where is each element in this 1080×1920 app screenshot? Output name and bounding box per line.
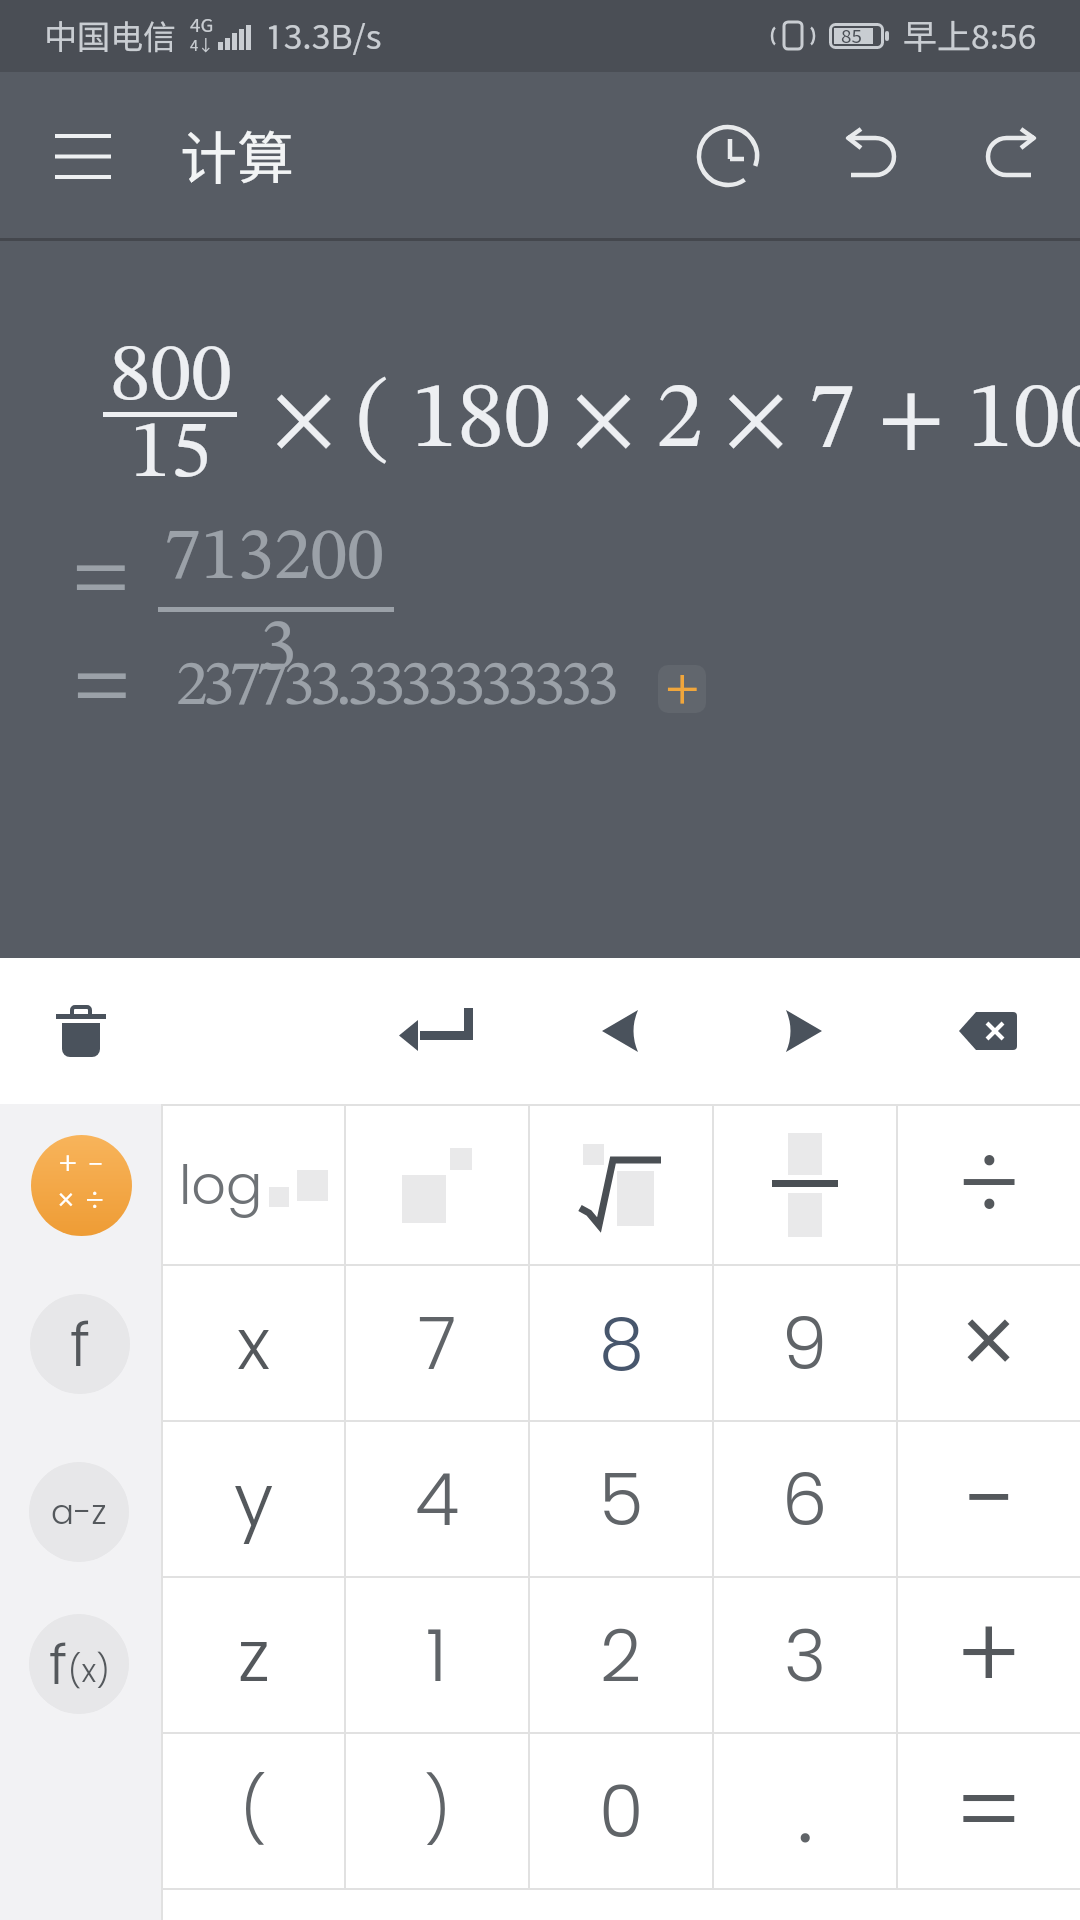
- staticText: 15: [130, 414, 212, 496]
- staticText: 3: [260, 613, 297, 687]
- button[interactable]: 2: [530, 1578, 712, 1732]
- staticText: 9: [782, 1293, 828, 1394]
- button[interactable]: 0: [530, 1734, 712, 1888]
- staticText: a-z: [51, 1488, 107, 1536]
- button[interactable]: +: [658, 665, 706, 713]
- staticText: =: [72, 537, 130, 617]
- button[interactable]: 4: [346, 1422, 528, 1576]
- staticText: (x): [68, 1648, 110, 1693]
- button[interactable]: [0, 958, 161, 1104]
- button[interactable]: (: [163, 1734, 344, 1888]
- staticText: 7: [418, 1293, 457, 1394]
- button[interactable]: =: [898, 1734, 1080, 1888]
- button[interactable]: .: [714, 1734, 896, 1888]
- button[interactable]: 5: [530, 1422, 712, 1576]
- button[interactable]: 7: [346, 1266, 528, 1420]
- button[interactable]: −: [898, 1422, 1080, 1576]
- staticText: 中国电信: [44, 17, 176, 56]
- button[interactable]: + −: [31, 1135, 132, 1236]
- button[interactable]: [346, 1106, 528, 1264]
- button[interactable]: +: [898, 1578, 1080, 1732]
- staticText: 4G: [190, 14, 214, 36]
- button[interactable]: f: [30, 1294, 130, 1394]
- staticText: .: [797, 1748, 814, 1874]
- staticText: =: [73, 645, 131, 725]
- staticText: +: [956, 1585, 1022, 1725]
- staticText: 2: [600, 1605, 642, 1706]
- staticText: 800: [110, 337, 232, 419]
- staticText: 早上8:56: [903, 16, 1037, 56]
- button[interactable]: [683, 111, 773, 201]
- staticText: 3: [784, 1605, 827, 1706]
- button[interactable]: ): [346, 1734, 528, 1888]
- staticText: z: [238, 1605, 270, 1706]
- staticText: log: [179, 1147, 263, 1223]
- button[interactable]: ÷: [898, 1106, 1080, 1264]
- staticText: ×: [959, 1273, 1019, 1413]
- staticText: 4: [415, 1449, 460, 1550]
- button[interactable]: 3: [714, 1578, 896, 1732]
- button[interactable]: y: [163, 1422, 344, 1576]
- staticText: ÷: [957, 1115, 1021, 1255]
- staticText: 0: [599, 1761, 644, 1862]
- staticText: −: [963, 1429, 1015, 1569]
- staticText: 计算: [180, 124, 294, 191]
- button[interactable]: [528, 958, 712, 1104]
- staticText: 8: [599, 1293, 644, 1394]
- button[interactable]: 6: [714, 1422, 896, 1576]
- button[interactable]: [530, 1106, 712, 1264]
- button[interactable]: 8: [530, 1266, 712, 1420]
- button[interactable]: [344, 958, 528, 1104]
- staticText: (: [240, 1766, 267, 1856]
- button[interactable]: 1: [346, 1578, 528, 1732]
- button[interactable]: [712, 958, 896, 1104]
- staticText: y: [234, 1449, 274, 1550]
- staticText: × ( 180 × 2 × 7 + 100: [273, 374, 1080, 468]
- staticText: 4↓: [190, 36, 214, 54]
- staticText: ): [424, 1766, 451, 1856]
- staticText: 1: [426, 1605, 448, 1706]
- staticText: 13.3B/s: [265, 16, 382, 56]
- button[interactable]: a-z: [29, 1462, 129, 1562]
- staticText: +: [665, 665, 700, 713]
- button[interactable]: 9: [714, 1266, 896, 1420]
- button[interactable]: [968, 121, 1053, 187]
- button[interactable]: f: [29, 1614, 129, 1714]
- button[interactable]: ×: [898, 1266, 1080, 1420]
- button[interactable]: [714, 1106, 896, 1264]
- button[interactable]: [35, 113, 131, 199]
- button[interactable]: x: [163, 1266, 344, 1420]
- staticText: f: [70, 1301, 91, 1388]
- staticText: × ÷: [57, 1180, 106, 1222]
- staticText: =: [955, 1741, 1023, 1881]
- staticText: 6: [782, 1449, 828, 1550]
- staticText: + −: [58, 1144, 105, 1186]
- button[interactable]: z: [163, 1578, 344, 1732]
- button[interactable]: [828, 121, 913, 187]
- button[interactable]: log: [163, 1106, 344, 1264]
- staticText: 5: [599, 1449, 644, 1550]
- button[interactable]: [896, 958, 1080, 1104]
- staticText: 713200: [164, 522, 384, 596]
- staticText: f: [49, 1625, 68, 1703]
- staticText: 85: [841, 25, 862, 47]
- staticText: 237733.3333333333: [176, 655, 614, 719]
- staticText: x: [237, 1293, 271, 1394]
